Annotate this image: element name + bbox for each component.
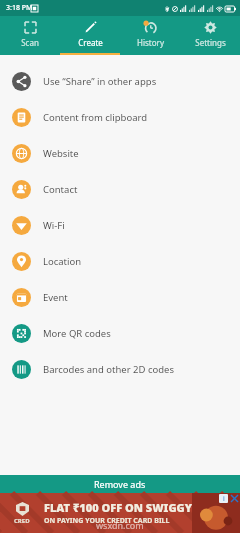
button[interactable]: Advertisement [0,493,240,533]
button[interactable]: Close ad [230,494,239,503]
staticText: Settings [195,37,226,48]
staticText: Scan [21,37,39,48]
staticText: Contact [43,183,78,196]
staticText: Website [43,147,79,160]
staticText: History [137,37,164,48]
button[interactable]: Location [0,243,240,279]
staticText: i [223,494,225,503]
staticText: Content from clipboard [43,111,148,124]
button[interactable]: Content from clipboard [0,99,240,135]
button[interactable]: Create [60,16,120,53]
button[interactable]: Use “Share” in other apps [0,63,240,99]
staticText: Create [78,37,103,48]
button[interactable]: History [120,16,180,53]
button[interactable]: Barcodes and other 2D codes [0,351,240,387]
button[interactable]: Scan [0,16,60,53]
button[interactable]: Event [0,279,240,315]
button[interactable]: Settings [180,16,240,53]
staticText: Event [43,291,68,304]
staticText: wsxdn.com [96,519,144,531]
staticText: CRED [14,517,30,525]
button[interactable]: Website [0,135,240,171]
staticText: Location [43,255,82,268]
staticText: 3:18 PM [6,3,33,13]
staticText: Use “Share” in other apps [43,75,157,88]
staticText: ON PAYING YOUR CREDIT CARD BILL [44,516,170,526]
button[interactable]: More QR codes [0,315,240,351]
staticText: FLAT ₹100 OFF ON SWIGGY [44,500,193,515]
staticText: More QR codes [43,327,111,340]
staticText: Wi-Fi [43,219,65,232]
staticText: Barcodes and other 2D codes [43,363,174,376]
staticText: Remove ads [94,478,146,490]
button[interactable]: Ad info [219,494,228,503]
button[interactable]: Wi-Fi [0,207,240,243]
button[interactable]: Contact [0,171,240,207]
button[interactable]: Remove ads [0,475,240,493]
